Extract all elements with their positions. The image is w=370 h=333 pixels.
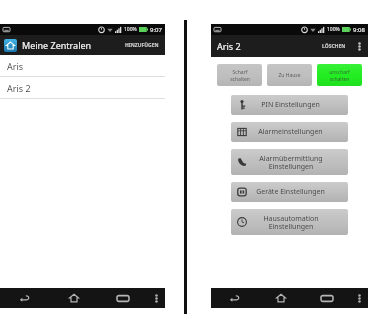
staticText: PIN Einstellungen <box>261 100 320 110</box>
staticText: Alarmeinstellungen <box>258 127 323 137</box>
button[interactable]: LÖSCHEN <box>320 43 348 50</box>
staticText: Geräte Einstellungen <box>256 187 325 197</box>
button[interactable]: More options <box>353 40 365 52</box>
button[interactable]: Zu Hause <box>267 64 312 86</box>
staticText: 100% <box>124 26 137 33</box>
staticText: Zu Hause <box>278 72 301 79</box>
button[interactable]: Alarmübermittlung Einstellungen <box>231 149 348 175</box>
staticText: 9:08 <box>353 26 365 34</box>
button[interactable]: Hausautomation Einstellungen <box>231 209 348 235</box>
staticText: unscharf schalten <box>329 69 350 82</box>
staticText: HINZUFÜGEN <box>125 42 159 49</box>
staticText: LÖSCHEN <box>322 43 346 50</box>
button[interactable]: Back <box>211 288 258 308</box>
button[interactable]: More options <box>350 288 368 308</box>
button[interactable]: Back <box>0 288 49 308</box>
button[interactable]: More options <box>147 288 165 308</box>
staticText: 100% <box>327 26 340 33</box>
staticText: Aris 2 <box>7 82 31 94</box>
staticText: Aris 2 <box>217 40 241 52</box>
button[interactable]: unscharf schalten <box>317 64 362 86</box>
button[interactable]: Aris <box>0 55 165 77</box>
button[interactable]: PIN Einstellungen <box>231 95 348 115</box>
staticText: 9:07 <box>150 26 162 34</box>
button[interactable]: Alarmeinstellungen <box>231 122 348 142</box>
staticText: Scharf schalten <box>230 69 250 82</box>
button[interactable]: Home <box>49 288 98 308</box>
staticText: Meine Zentralen <box>22 39 92 51</box>
button[interactable]: Home <box>258 288 304 308</box>
staticText: Aris <box>7 60 24 72</box>
button[interactable]: Recent apps <box>304 288 350 308</box>
button[interactable]: Aris 2 <box>0 77 165 99</box>
button[interactable]: Scharf schalten <box>217 64 262 86</box>
button[interactable]: HINZUFÜGEN <box>123 42 161 49</box>
button[interactable]: Geräte Einstellungen <box>231 182 348 202</box>
staticText: Hausautomation Einstellungen <box>263 214 319 231</box>
staticText: Alarmübermittlung Einstellungen <box>259 154 323 171</box>
button[interactable]: Recent apps <box>98 288 147 308</box>
